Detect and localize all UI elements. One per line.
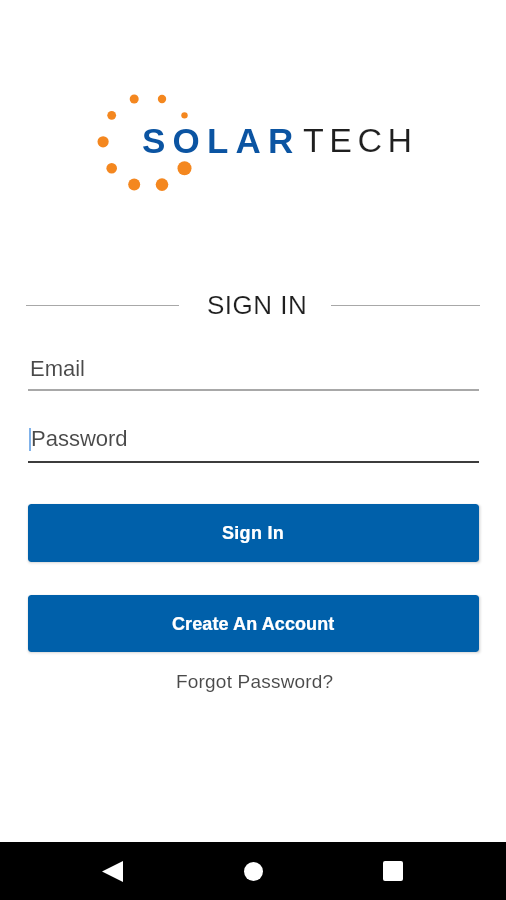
button[interactable]: Home <box>211 842 295 900</box>
staticText: Password <box>31 426 128 451</box>
staticText: Create An Account <box>172 614 335 634</box>
staticText: Email <box>30 356 86 381</box>
button[interactable]: Create An Account <box>28 595 479 652</box>
button[interactable]: Back <box>70 842 154 900</box>
staticText: SIGN IN <box>207 290 308 319</box>
button[interactable]: Recent apps <box>351 842 435 900</box>
staticText: Sign In <box>222 523 285 543</box>
staticText: SOLAR <box>142 121 301 160</box>
button[interactable]: Forgot Password? <box>168 665 342 698</box>
staticText: TECH <box>303 121 418 159</box>
button[interactable]: Sign In <box>28 504 479 562</box>
